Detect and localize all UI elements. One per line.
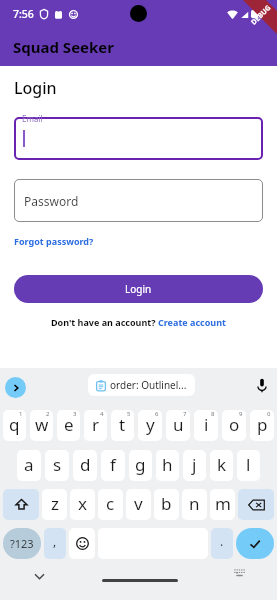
staticText: 3 [73, 410, 77, 418]
staticText: s [53, 453, 62, 476]
button[interactable]: h [156, 450, 179, 481]
button[interactable]: w [30, 410, 53, 441]
staticText: Login [14, 77, 57, 99]
staticText: 2 [46, 410, 50, 418]
staticText: n [189, 492, 200, 515]
button[interactable]: Password [14, 179, 263, 222]
button[interactable]: Login [14, 275, 263, 303]
staticText: o [229, 413, 240, 436]
button[interactable]: Switch keyboard [231, 565, 247, 581]
button[interactable]: g [129, 450, 152, 481]
button[interactable]: d [73, 450, 97, 481]
staticText: 7:56 [13, 7, 34, 21]
staticText: Email [22, 113, 43, 124]
button[interactable]: q [3, 410, 26, 441]
button[interactable]: a [17, 450, 41, 481]
button[interactable]: e [57, 410, 80, 441]
staticText: i [204, 413, 209, 436]
staticText: Password [24, 193, 79, 209]
button[interactable]: , [44, 528, 66, 559]
staticText: Create account [158, 316, 226, 328]
button[interactable] [14, 117, 263, 160]
staticText: 8 [211, 410, 215, 418]
staticText: r [92, 413, 100, 436]
button[interactable]: l [237, 450, 260, 481]
staticText: u [173, 413, 184, 436]
button[interactable]: n [182, 489, 207, 520]
staticText: Don't have an account? [51, 316, 158, 328]
button[interactable]: j [183, 450, 206, 481]
staticText: j [192, 453, 197, 476]
staticText: 5 [127, 410, 131, 418]
button[interactable]: Shift [3, 489, 39, 520]
button[interactable]: c [98, 489, 123, 520]
staticText: v [134, 492, 143, 515]
button[interactable]: Voice input [251, 375, 272, 396]
staticText: 6 [155, 410, 159, 418]
button[interactable]: z [42, 489, 67, 520]
button[interactable]: Create account [158, 316, 226, 328]
staticText: Login [125, 282, 152, 296]
staticText: k [217, 453, 227, 476]
staticText: e [64, 413, 74, 436]
button[interactable]: o [222, 410, 246, 441]
staticText: 0 [267, 410, 271, 418]
button[interactable]: Forgot password? [14, 235, 94, 247]
button[interactable]: x [70, 489, 95, 520]
staticText: m [215, 492, 231, 515]
button[interactable]: r [84, 410, 107, 441]
staticText: g [135, 453, 146, 476]
button[interactable]: v [126, 489, 151, 520]
staticText: 4 [100, 410, 104, 418]
button[interactable]: Backspace [238, 489, 274, 520]
button[interactable]: i [194, 410, 218, 441]
staticText: 9 [239, 410, 243, 418]
button[interactable]: Hide keyboard [29, 566, 49, 586]
button[interactable]: More suggestions [5, 377, 26, 398]
staticText: , [53, 533, 57, 549]
button[interactable]: Emoji [69, 528, 95, 559]
staticText: f [110, 453, 116, 476]
staticText: DEBUG [249, 3, 274, 27]
staticText: h [162, 453, 173, 476]
staticText: 1 [19, 410, 23, 418]
staticText: z [51, 492, 59, 515]
staticText: x [78, 492, 87, 515]
staticText: . [220, 533, 224, 549]
button[interactable]: . [211, 528, 233, 559]
staticText: b [161, 492, 172, 515]
staticText: t [119, 413, 126, 436]
staticText: q [9, 413, 20, 436]
staticText: c [106, 492, 115, 515]
button[interactable]: k [210, 450, 233, 481]
button[interactable]: ?123 [3, 528, 41, 559]
staticText: ?123 [10, 536, 34, 551]
staticText: order: Outlinel... [110, 378, 187, 392]
staticText: d [80, 453, 91, 476]
button[interactable]: p [250, 410, 274, 441]
staticText: l [246, 453, 251, 476]
staticText: Forgot password? [14, 235, 94, 247]
staticText: Squad Seeker [13, 37, 114, 57]
button[interactable]: m [210, 489, 235, 520]
button[interactable]: s [45, 450, 69, 481]
button[interactable]: y [138, 410, 162, 441]
button[interactable]: b [154, 489, 179, 520]
button[interactable]: Enter [236, 528, 274, 559]
staticText: 7 [183, 410, 187, 418]
button[interactable]: u [166, 410, 190, 441]
button[interactable]: f [101, 450, 125, 481]
staticText: p [257, 413, 268, 436]
staticText: w [35, 413, 49, 436]
staticText: y [146, 413, 155, 436]
button[interactable]: t [111, 410, 134, 441]
button[interactable]: order: Outlinel... [96, 374, 195, 396]
staticText: a [24, 453, 34, 476]
